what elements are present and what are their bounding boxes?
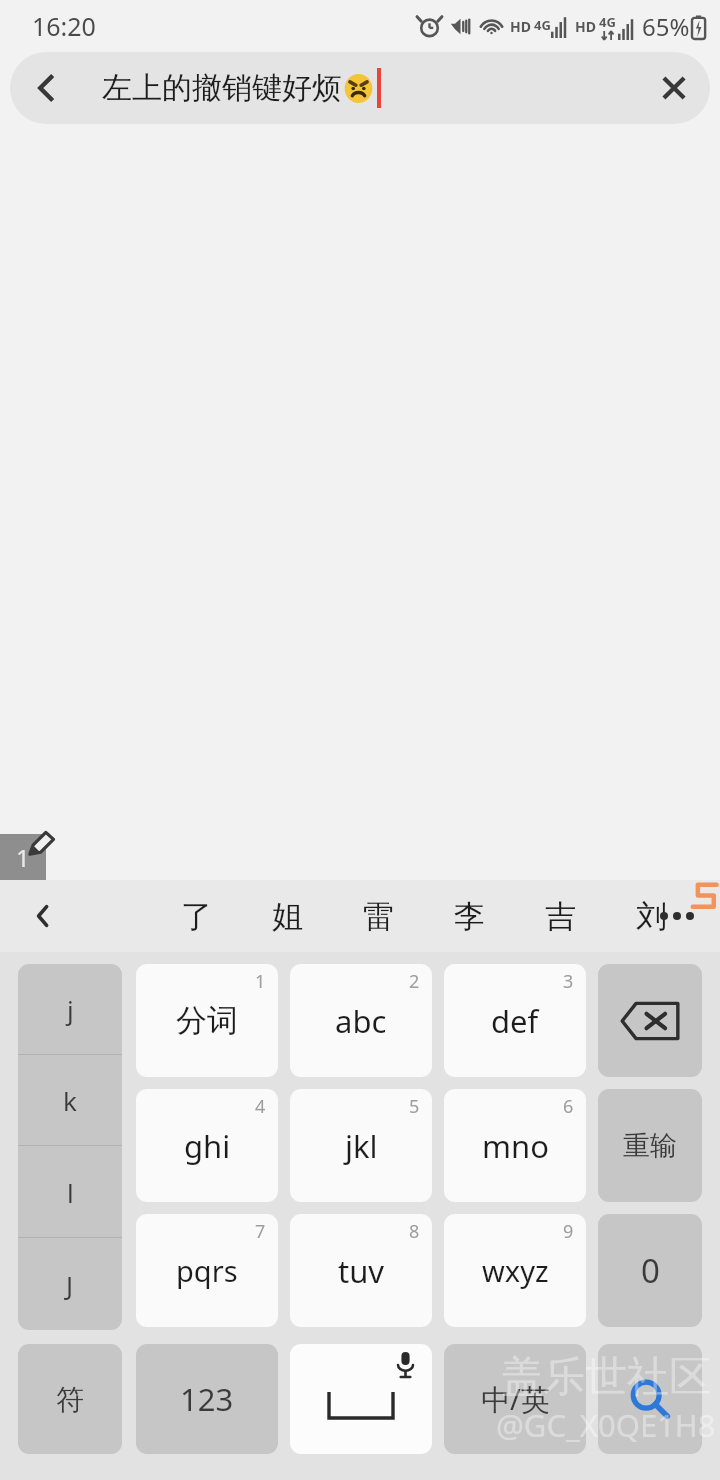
staticText: k <box>63 1083 77 1118</box>
button[interactable]: Previous <box>0 880 86 952</box>
staticText: l <box>67 1175 74 1210</box>
staticText: 4 <box>255 1094 266 1119</box>
staticText: 16:20 <box>32 9 96 43</box>
button[interactable]: pqrs <box>136 1214 278 1327</box>
staticText: J <box>66 1267 74 1302</box>
staticText: abc <box>335 1000 387 1042</box>
staticText: @GC_X0QE1H8 <box>496 1404 716 1446</box>
button[interactable]: jkl <box>290 1089 432 1202</box>
button[interactable]: l <box>18 1146 122 1238</box>
button[interactable]: mno <box>444 1089 586 1202</box>
staticText: 分词 <box>176 1001 238 1040</box>
staticText: 8 <box>409 1219 420 1244</box>
staticText: ghi <box>184 1125 231 1167</box>
staticText: mno <box>482 1125 549 1167</box>
staticText: 5 <box>409 1094 420 1119</box>
button[interactable]: 姐 <box>251 880 323 952</box>
button[interactable]: 0 <box>598 1214 702 1327</box>
button[interactable]: Space <box>290 1344 432 1454</box>
staticText: 雷 <box>363 897 394 936</box>
button[interactable]: 123 <box>136 1344 278 1454</box>
button[interactable]: k <box>18 1055 122 1146</box>
staticText: pqrs <box>176 1251 238 1290</box>
staticText: 刘 <box>636 897 667 936</box>
staticText: 重输 <box>623 1129 677 1163</box>
button[interactable]: 李 <box>433 880 505 952</box>
button[interactable]: 了 <box>160 880 232 952</box>
staticText: 姐 <box>272 897 303 936</box>
button[interactable]: 刘 <box>615 880 687 952</box>
button[interactable]: 分词 <box>136 964 278 1077</box>
staticText: 李 <box>454 897 485 936</box>
staticText: 6 <box>563 1094 574 1119</box>
button[interactable]: j <box>18 964 122 1055</box>
staticText: def <box>491 1000 539 1042</box>
staticText: 中/英 <box>481 1379 550 1419</box>
button[interactable]: abc <box>290 964 432 1077</box>
staticText: 左上的撤销键好烦 <box>102 69 342 107</box>
button[interactable]: 吉 <box>524 880 596 952</box>
staticText: 吉 <box>545 897 576 936</box>
staticText: 盖乐世社区 <box>501 1351 711 1404</box>
staticText: 4G <box>599 13 616 31</box>
staticText: 7 <box>255 1219 266 1244</box>
button[interactable]: 雷 <box>342 880 414 952</box>
staticText: jkl <box>345 1125 378 1167</box>
staticText: 9 <box>563 1219 574 1244</box>
button[interactable]: tuv <box>290 1214 432 1327</box>
button[interactable]: Search <box>598 1344 702 1454</box>
button[interactable]: 中/英 <box>444 1344 586 1454</box>
button[interactable]: Backspace <box>598 964 702 1077</box>
button[interactable]: J <box>18 1238 122 1330</box>
staticText: j <box>67 992 74 1027</box>
staticText: 2 <box>409 969 420 994</box>
staticText: HD <box>575 17 596 36</box>
staticText: wxyz <box>482 1251 549 1290</box>
button[interactable]: def <box>444 964 586 1077</box>
button[interactable]: 符 <box>18 1344 122 1454</box>
staticText: 65% <box>642 10 690 43</box>
button[interactable]: 重输 <box>598 1089 702 1202</box>
staticText: HD <box>510 17 531 36</box>
staticText: 4G <box>534 16 551 34</box>
staticText: 3 <box>563 969 574 994</box>
staticText: 123 <box>180 1378 234 1420</box>
staticText: 0 <box>641 1248 660 1293</box>
staticText: 1 <box>16 841 30 874</box>
button[interactable]: wxyz <box>444 1214 586 1327</box>
button[interactable]: More candidates <box>634 880 720 952</box>
button[interactable]: ghi <box>136 1089 278 1202</box>
staticText: 符 <box>56 1382 84 1417</box>
staticText: 1 <box>255 969 266 994</box>
staticText: 了 <box>181 897 212 936</box>
button[interactable]: Page 1 <box>0 834 46 880</box>
button[interactable]: Back <box>10 52 82 124</box>
staticText: tuv <box>338 1250 385 1292</box>
button[interactable]: Clear <box>638 52 710 124</box>
